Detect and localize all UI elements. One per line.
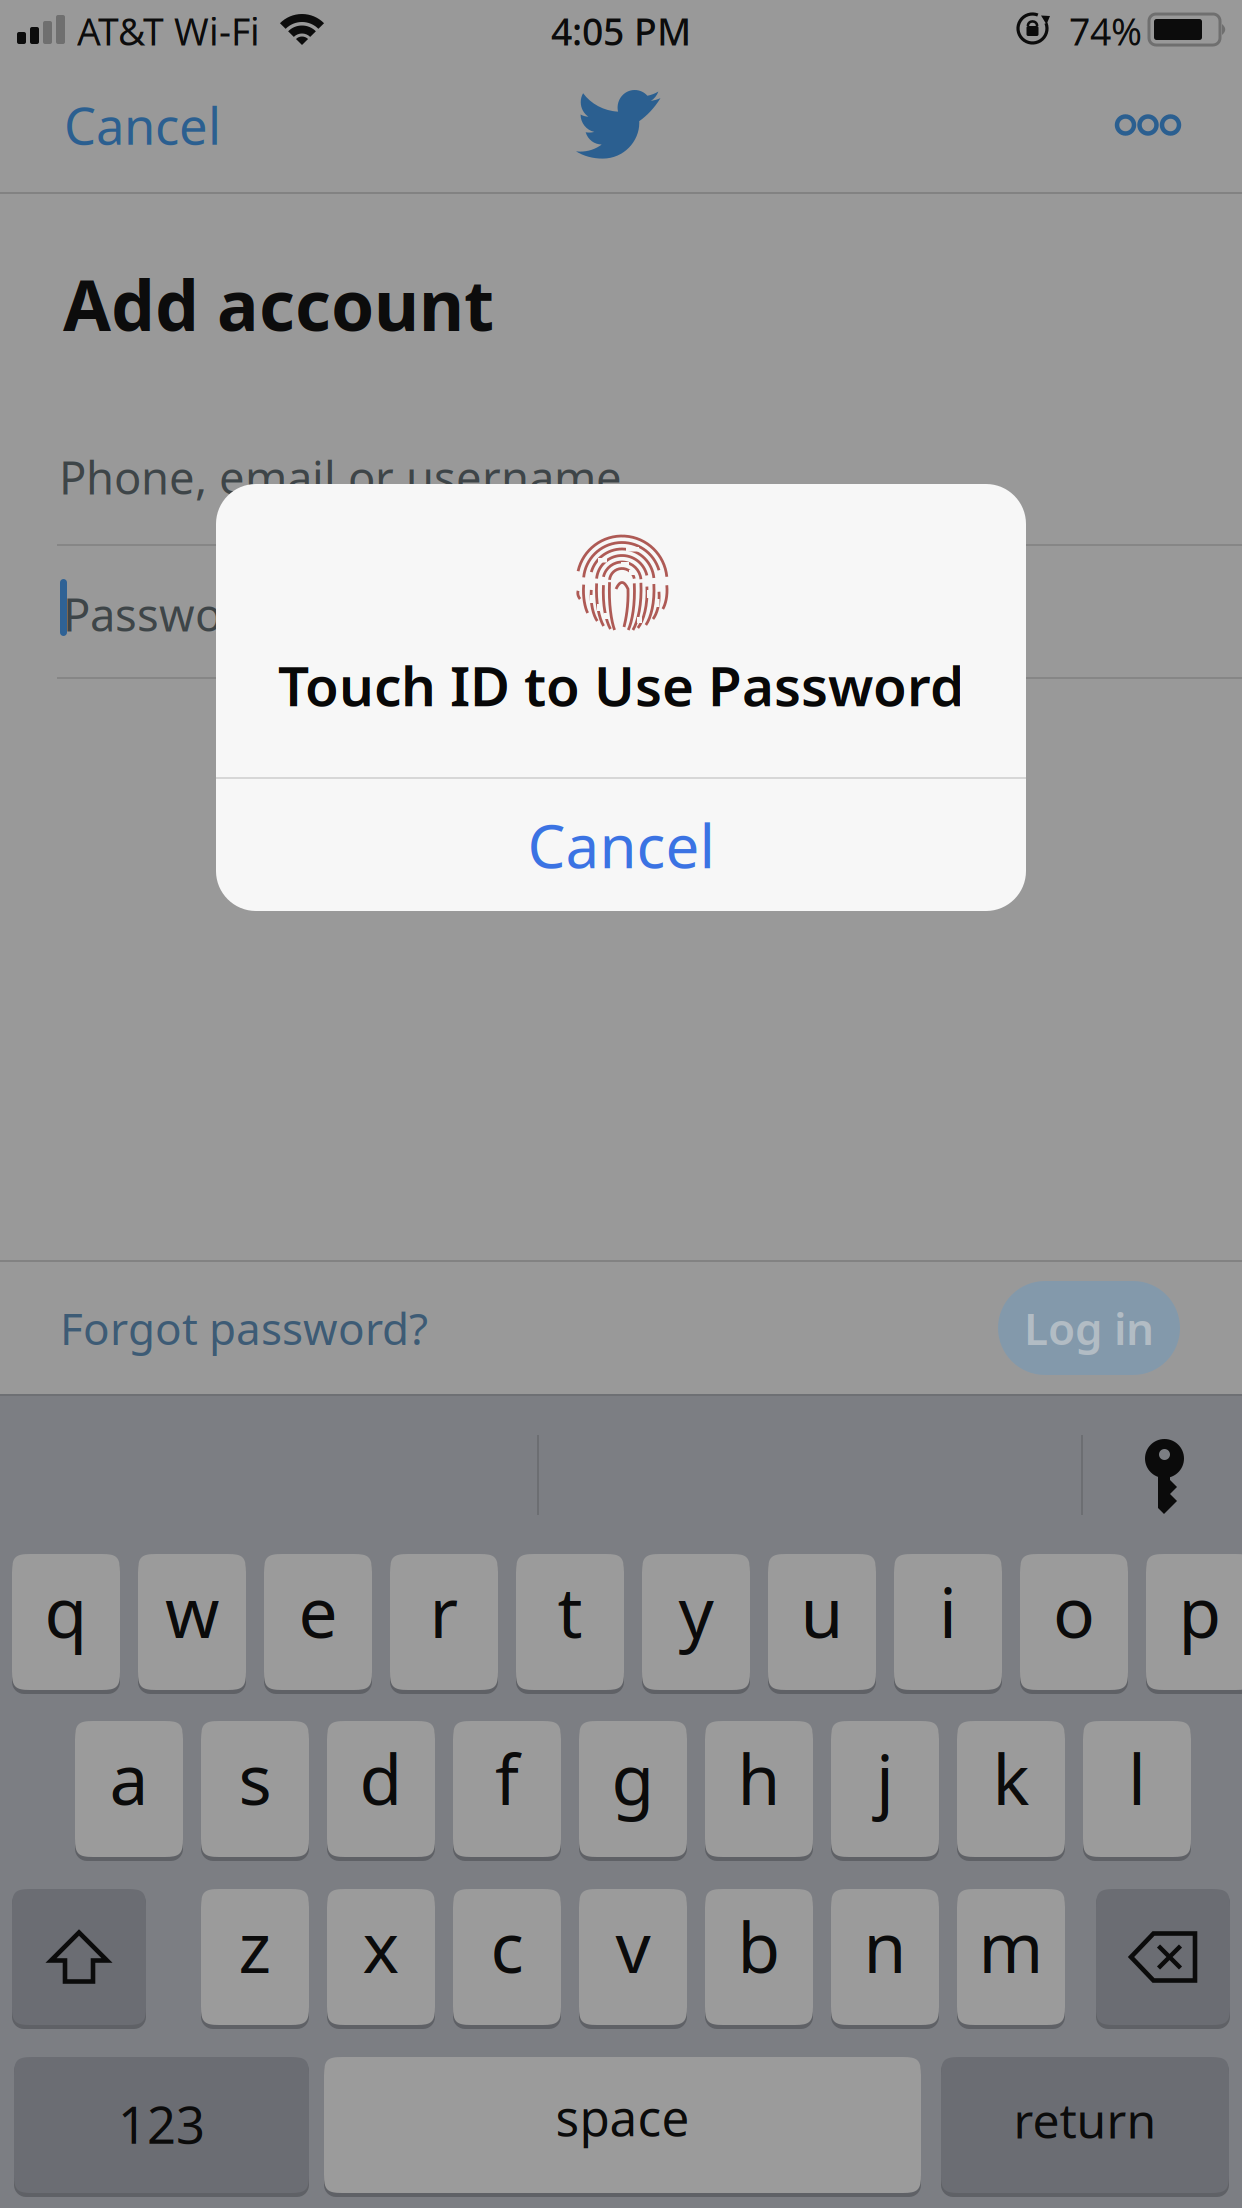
- button[interactable]: f: [453, 1721, 561, 1861]
- staticText: y: [678, 1565, 713, 1657]
- button[interactable]: m: [957, 1889, 1065, 2029]
- button[interactable]: Log in: [998, 1281, 1180, 1375]
- staticText: e: [298, 1565, 337, 1657]
- staticText: g: [611, 1732, 654, 1824]
- staticText: x: [362, 1900, 399, 1992]
- button[interactable]: Passwords: [1145, 1439, 1185, 1515]
- button[interactable]: c: [453, 1889, 561, 2029]
- button[interactable]: p: [1146, 1554, 1242, 1694]
- button[interactable]: a: [75, 1721, 183, 1861]
- staticText: Cancel: [64, 91, 221, 159]
- staticText: Cancel: [527, 805, 714, 885]
- staticText: z: [238, 1900, 271, 1992]
- staticText: AT&T Wi-Fi: [77, 6, 260, 56]
- staticText: o: [1053, 1565, 1095, 1657]
- button[interactable]: w: [138, 1554, 246, 1694]
- staticText: 123: [118, 2090, 205, 2158]
- staticText: Phone, email or username: [59, 447, 622, 507]
- staticText: d: [359, 1732, 402, 1824]
- button[interactable]: e: [264, 1554, 372, 1694]
- button[interactable]: r: [390, 1554, 498, 1694]
- button[interactable]: n: [831, 1889, 939, 2029]
- staticText: n: [863, 1900, 906, 1992]
- button[interactable]: return: [941, 2057, 1229, 2197]
- button[interactable]: 123: [14, 2057, 309, 2197]
- staticText: m: [978, 1900, 1043, 1992]
- button[interactable]: u: [768, 1554, 876, 1694]
- staticText: f: [495, 1732, 519, 1824]
- button[interactable]: q: [12, 1554, 120, 1694]
- staticText: p: [1178, 1565, 1221, 1657]
- staticText: a: [109, 1732, 148, 1824]
- staticText: Password: [63, 584, 268, 644]
- button[interactable]: l: [1083, 1721, 1191, 1861]
- button[interactable]: h: [705, 1721, 813, 1861]
- staticText: q: [44, 1565, 87, 1657]
- staticText: v: [615, 1900, 650, 1992]
- button[interactable]: k: [957, 1721, 1065, 1861]
- staticText: l: [1128, 1732, 1146, 1824]
- button[interactable]: space: [324, 2057, 921, 2197]
- button[interactable]: z: [201, 1889, 309, 2029]
- staticText: s: [238, 1732, 271, 1824]
- staticText: i: [939, 1565, 957, 1657]
- staticText: 4:05 PM: [551, 6, 691, 56]
- button[interactable]: d: [327, 1721, 435, 1861]
- staticText: h: [737, 1732, 780, 1824]
- button[interactable]: v: [579, 1889, 687, 2029]
- button[interactable]: s: [201, 1721, 309, 1861]
- staticText: return: [1013, 2088, 1156, 2152]
- button[interactable]: Delete: [1096, 1889, 1230, 2025]
- staticText: Touch ID to Use Password: [278, 649, 964, 721]
- button[interactable]: Forgot password?: [0, 1262, 620, 1394]
- staticText: Forgot password?: [60, 1299, 428, 1357]
- staticText: u: [800, 1565, 843, 1657]
- button[interactable]: b: [705, 1889, 813, 2029]
- staticText: Log in: [1024, 1299, 1154, 1357]
- button[interactable]: Cancel: [0, 62, 280, 188]
- staticText: r: [429, 1565, 458, 1657]
- button[interactable]: o: [1020, 1554, 1128, 1694]
- button[interactable]: g: [579, 1721, 687, 1861]
- staticText: t: [557, 1565, 582, 1657]
- button[interactable]: j: [831, 1721, 939, 1861]
- staticText: 74%: [1069, 6, 1142, 56]
- staticText: c: [490, 1900, 523, 1992]
- staticText: Add account: [63, 258, 494, 350]
- staticText: space: [555, 2084, 689, 2150]
- staticText: j: [876, 1732, 894, 1824]
- staticText: b: [737, 1900, 780, 1992]
- button[interactable]: Shift: [12, 1889, 146, 2025]
- button[interactable]: Cancel: [216, 779, 1026, 911]
- staticText: w: [165, 1565, 219, 1657]
- button[interactable]: y: [642, 1554, 750, 1694]
- staticText: k: [992, 1732, 1029, 1824]
- button[interactable]: i: [894, 1554, 1002, 1694]
- button[interactable]: t: [516, 1554, 624, 1694]
- button[interactable]: More: [1068, 62, 1228, 188]
- button[interactable]: x: [327, 1889, 435, 2029]
